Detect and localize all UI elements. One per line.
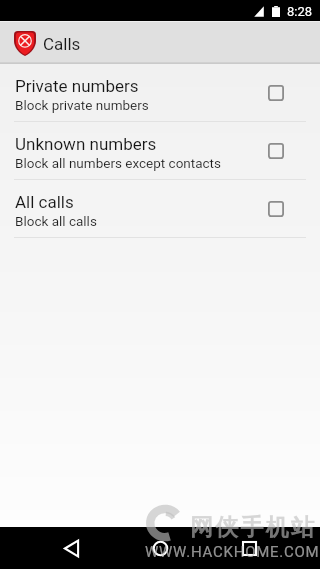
staticText: WWW.HACKHOME.COM: [145, 543, 320, 561]
staticText: Block all numbers except contacts: [15, 155, 222, 171]
button[interactable]: Home: [138, 527, 182, 569]
staticText: Block private numbers: [15, 97, 149, 113]
staticText: Unknown numbers: [15, 134, 157, 154]
staticText: Block all calls: [15, 213, 97, 229]
button[interactable]: Unknown numbers: [0, 122, 320, 179]
button[interactable]: All calls: [0, 180, 320, 237]
staticText: 8:28: [287, 4, 313, 19]
button[interactable]: Toggle: [262, 137, 290, 165]
button[interactable]: Toggle: [262, 79, 290, 107]
staticText: Calls: [43, 34, 81, 54]
staticText: Private numbers: [15, 76, 139, 96]
button[interactable]: Recents: [227, 527, 271, 569]
staticText: 网侠手机站: [189, 513, 315, 542]
button[interactable]: Back: [49, 527, 93, 569]
staticText: All calls: [15, 192, 74, 212]
button[interactable]: Toggle: [262, 195, 290, 223]
button[interactable]: Private numbers: [0, 64, 320, 121]
